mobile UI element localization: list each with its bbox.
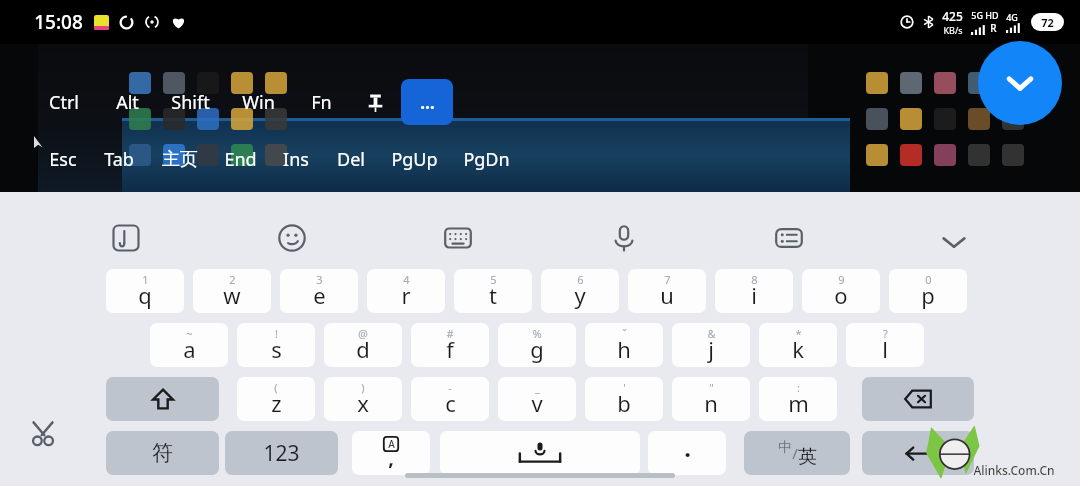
button[interactable]: Keyboard layout xyxy=(440,220,476,256)
button[interactable]: 6 xyxy=(541,269,619,313)
button[interactable]: Voice input xyxy=(606,220,642,256)
button[interactable]: Comma and input mode xyxy=(352,431,430,475)
staticText: 中 xyxy=(778,439,792,457)
button[interactable]: & xyxy=(672,323,750,367)
button[interactable]: ' xyxy=(585,377,663,421)
staticText: 3 xyxy=(316,272,323,287)
button[interactable]: 主页 xyxy=(144,137,216,181)
button[interactable]: End xyxy=(204,137,276,181)
button[interactable]: Emoji xyxy=(274,220,310,256)
staticText: g xyxy=(530,334,544,364)
button[interactable]: Shift xyxy=(106,377,219,421)
staticText: ) xyxy=(361,380,365,395)
staticText: , xyxy=(388,444,394,471)
staticText: - xyxy=(448,380,452,395)
button[interactable]: Symbols xyxy=(106,431,219,475)
staticText: 123 xyxy=(263,439,300,468)
staticText: Fn xyxy=(311,90,332,115)
staticText: _ xyxy=(535,380,540,395)
button[interactable]: 8 xyxy=(715,269,793,313)
button[interactable]: PgDn xyxy=(450,137,522,181)
button[interactable]: 4 xyxy=(367,269,445,313)
button[interactable]: _ xyxy=(498,377,576,421)
staticText: 1 xyxy=(142,272,149,287)
button[interactable]: More keys xyxy=(401,79,453,125)
staticText: 5 xyxy=(490,272,497,287)
staticText: 5G HD xyxy=(971,9,999,21)
button[interactable]: 7 xyxy=(628,269,706,313)
button[interactable]: Shift xyxy=(156,80,224,124)
staticText: KB/s xyxy=(943,24,963,36)
staticText: PgUp xyxy=(391,147,438,172)
staticText: 6 xyxy=(577,272,584,287)
staticText: Win xyxy=(242,90,275,115)
button[interactable]: Tab xyxy=(83,137,155,181)
button[interactable]: ) xyxy=(324,377,402,421)
button[interactable]: : xyxy=(759,377,837,421)
button[interactable]: % xyxy=(498,323,576,367)
button[interactable]: Alt xyxy=(93,80,161,124)
button[interactable]: # xyxy=(411,323,489,367)
button[interactable]: Handwriting xyxy=(108,220,144,256)
button[interactable]: 0 xyxy=(889,269,967,313)
button[interactable]: Pin toolbar xyxy=(352,80,398,124)
staticText: f xyxy=(446,334,454,364)
staticText: 7 xyxy=(664,272,671,287)
button[interactable]: ! xyxy=(237,323,315,367)
button[interactable]: Ctrl xyxy=(30,80,98,124)
button[interactable]: * xyxy=(759,323,837,367)
staticText: t xyxy=(489,280,497,310)
button[interactable]: Clipboard xyxy=(20,410,66,456)
button[interactable]: " xyxy=(672,377,750,421)
button[interactable]: @ xyxy=(324,323,402,367)
button[interactable]: Win xyxy=(224,80,292,124)
button[interactable]: 1 xyxy=(106,269,184,313)
button[interactable]: 2 xyxy=(193,269,271,313)
button[interactable]: Period xyxy=(648,431,726,475)
button[interactable]: Esc xyxy=(27,137,99,181)
button[interactable]: Del xyxy=(315,137,387,181)
staticText: PgDn xyxy=(463,147,510,172)
button[interactable]: 5 xyxy=(454,269,532,313)
button[interactable]: PgUp xyxy=(378,137,450,181)
staticText: q xyxy=(138,280,152,310)
staticText: Alt xyxy=(116,90,139,115)
staticText: · xyxy=(684,437,691,470)
staticText: Alinks.Com.Cn xyxy=(973,462,1055,478)
staticText: # xyxy=(446,326,454,341)
staticText: % xyxy=(532,326,542,341)
staticText: s xyxy=(271,334,282,364)
button[interactable]: Ins xyxy=(260,137,332,181)
button[interactable]: Enter xyxy=(862,431,974,475)
button[interactable]: Chinese English toggle xyxy=(744,431,850,475)
button[interactable]: Clipboard history xyxy=(771,220,807,256)
staticText: z xyxy=(271,388,282,418)
staticText: m xyxy=(788,388,809,418)
staticText: ˇ xyxy=(622,326,627,341)
button[interactable]: Hide keyboard xyxy=(932,220,976,264)
button[interactable]: 3 xyxy=(280,269,358,313)
staticText: " xyxy=(709,380,714,395)
staticText: * xyxy=(795,326,802,341)
staticText: Del xyxy=(337,147,365,172)
button[interactable]: ~ xyxy=(150,323,228,367)
staticText: l xyxy=(882,334,888,364)
button[interactable]: Numbers xyxy=(225,431,338,475)
staticText: 主页 xyxy=(162,148,198,171)
staticText: 9 xyxy=(838,272,845,287)
button[interactable]: ˇ xyxy=(585,323,663,367)
button[interactable]: - xyxy=(411,377,489,421)
button[interactable]: 9 xyxy=(802,269,880,313)
staticText: ? xyxy=(883,326,888,341)
staticText: 英 xyxy=(798,445,817,469)
button[interactable]: ( xyxy=(237,377,315,421)
button[interactable]: Backspace xyxy=(862,377,974,421)
staticText: v xyxy=(531,388,543,418)
button[interactable]: Space xyxy=(440,431,640,475)
button[interactable]: Fn xyxy=(287,80,355,124)
staticText: ' xyxy=(623,380,626,395)
staticText: y xyxy=(574,280,586,310)
button[interactable]: ? xyxy=(846,323,924,367)
staticText: j xyxy=(708,334,714,364)
button[interactable]: Hide toolbar xyxy=(978,41,1062,125)
